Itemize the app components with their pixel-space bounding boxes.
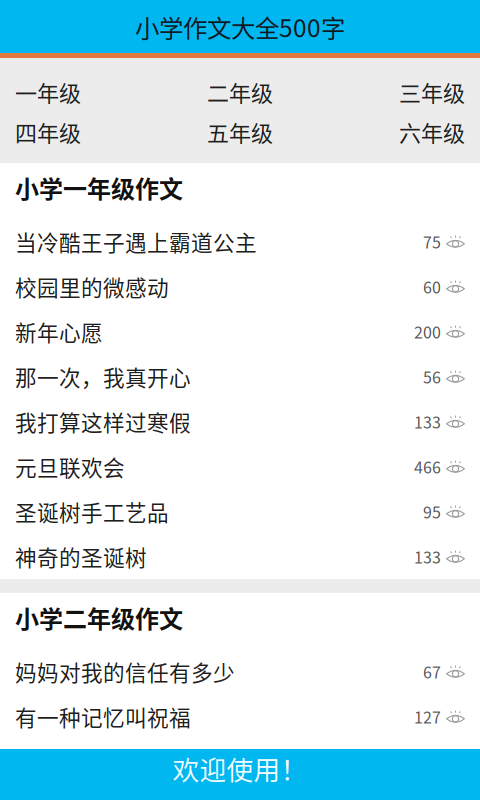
staticText: 神奇的圣诞树 (15, 541, 147, 572)
button[interactable]: 我打算这样过寒假 (0, 399, 480, 444)
staticText: 有一种记忆叫祝福 (15, 701, 191, 732)
staticText: 小学二年级作文 (15, 600, 183, 635)
staticText: 133 (414, 410, 441, 433)
button[interactable]: 妈妈对我的信任有多少 (0, 649, 480, 694)
staticText: 四年级 (15, 116, 81, 148)
staticText: 133 (414, 545, 441, 568)
staticText: 二年级 (207, 76, 273, 108)
staticText: 校园里的微感动 (15, 271, 169, 302)
staticText: 欢迎使用！ (172, 749, 307, 788)
staticText: 75 (423, 230, 441, 253)
button[interactable]: 三年级 (315, 72, 465, 112)
staticText: 新年心愿 (15, 316, 103, 347)
staticText: 67 (423, 660, 441, 683)
button[interactable]: 六年级 (315, 112, 465, 152)
button[interactable]: 元旦联欢会 (0, 444, 480, 489)
button[interactable]: 一年级 (15, 72, 165, 112)
staticText: 六年级 (399, 116, 465, 148)
button[interactable]: 欢迎使用！ (0, 749, 480, 800)
button[interactable]: 四年级 (15, 112, 165, 152)
button[interactable]: 圣诞树手工艺品 (0, 489, 480, 534)
button[interactable]: 当冷酷王子遇上霸道公主 (0, 219, 480, 264)
button[interactable]: 新年心愿 (0, 309, 480, 354)
staticText: 三年级 (399, 76, 465, 108)
button[interactable]: 有一种记忆叫祝福 (0, 694, 480, 739)
staticText: 200 (414, 320, 441, 343)
staticText: 56 (423, 365, 441, 388)
staticText: 466 (414, 455, 441, 478)
staticText: 元旦联欢会 (15, 451, 125, 482)
staticText: 95 (423, 500, 441, 523)
button[interactable]: 神奇的圣诞树 (0, 534, 480, 579)
staticText: 五年级 (207, 116, 273, 148)
staticText: 小学作文大全500字 (135, 9, 345, 44)
staticText: 我打算这样过寒假 (15, 406, 191, 437)
staticText: 小学一年级作文 (15, 170, 183, 205)
button[interactable]: 那一次，我真开心 (0, 354, 480, 399)
button[interactable]: 校园里的微感动 (0, 264, 480, 309)
button[interactable]: 五年级 (165, 112, 315, 152)
staticText: 当冷酷王子遇上霸道公主 (15, 226, 257, 257)
staticText: 一年级 (15, 76, 81, 108)
staticText: 那一次，我真开心 (15, 361, 191, 392)
staticText: 60 (423, 275, 441, 298)
staticText: 127 (414, 705, 441, 728)
staticText: 妈妈对我的信任有多少 (15, 656, 235, 687)
button[interactable]: 二年级 (165, 72, 315, 112)
staticText: 圣诞树手工艺品 (15, 496, 169, 527)
